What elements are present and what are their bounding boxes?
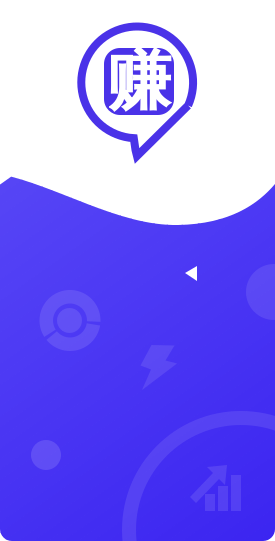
staticText: 赚 xyxy=(107,42,171,121)
